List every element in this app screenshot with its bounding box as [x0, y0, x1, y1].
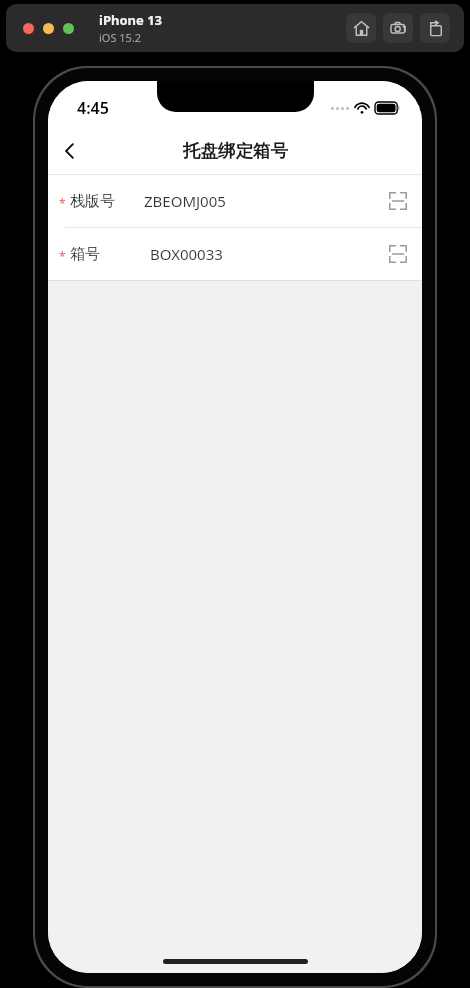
- staticText: ZBEOMJ005: [144, 191, 226, 211]
- staticText: 栈版号: [70, 192, 115, 211]
- button[interactable]: Back: [48, 129, 92, 173]
- button[interactable]: Scan 栈版号: [378, 181, 418, 221]
- staticText: *: [59, 248, 66, 264]
- button[interactable]: Scan 箱号: [378, 234, 418, 274]
- staticText: BOX00033: [150, 244, 223, 264]
- button[interactable]: *: [48, 228, 422, 280]
- button[interactable]: *: [48, 175, 422, 227]
- staticText: 箱号: [70, 245, 100, 264]
- button[interactable]: Screenshot: [383, 13, 413, 43]
- staticText: 4:45: [77, 97, 109, 119]
- button[interactable]: Home: [346, 13, 376, 43]
- staticText: iOS 15.2: [99, 30, 142, 45]
- staticText: *: [59, 195, 66, 211]
- staticText: 托盘绑定箱号: [183, 140, 288, 162]
- button[interactable]: Rotate: [420, 13, 450, 43]
- staticText: iPhone 13: [99, 11, 162, 29]
